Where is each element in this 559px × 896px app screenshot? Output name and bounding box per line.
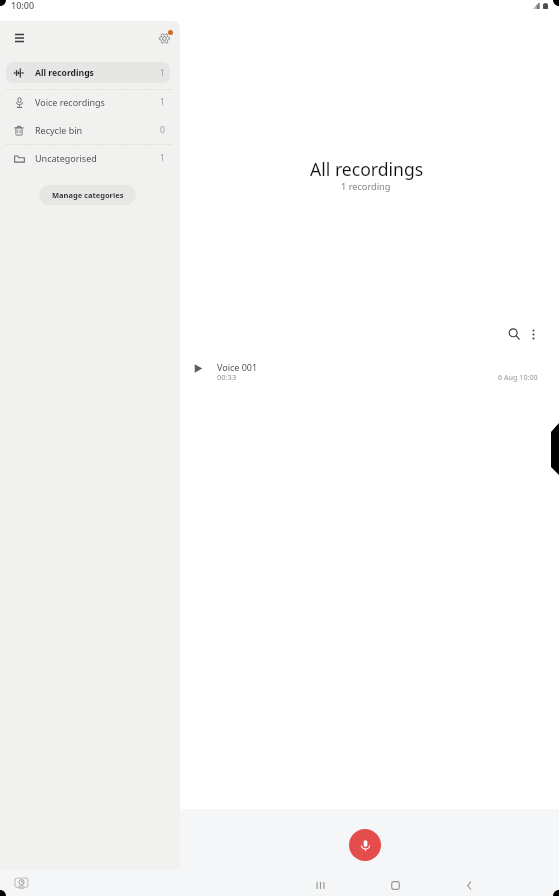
staticText: 1 <box>160 96 165 108</box>
staticText: All recordings <box>310 157 424 181</box>
staticText: Recycle bin <box>35 124 83 136</box>
button[interactable]: Home <box>389 879 401 891</box>
staticText: All recordings <box>35 67 94 79</box>
button[interactable]: Uncategorised <box>6 147 170 168</box>
staticText: 0 <box>160 124 165 136</box>
button[interactable]: Voice recordings <box>6 91 170 112</box>
staticText: Manage categories <box>52 190 124 200</box>
button[interactable]: Recents <box>314 879 326 891</box>
staticText: 1 <box>160 67 165 79</box>
button[interactable]: Recycle bin <box>6 119 170 140</box>
button[interactable]: More options <box>523 324 543 344</box>
staticText: Voice 001 <box>217 361 258 373</box>
button[interactable]: Screen timeout <box>11 873 32 894</box>
staticText: 1 recording <box>341 180 391 193</box>
staticText: 10:00 <box>11 0 35 11</box>
staticText: 1 <box>160 152 165 164</box>
button[interactable]: Navigation menu <box>9 28 29 48</box>
staticText: 6 Aug 10:00 <box>498 372 538 382</box>
button[interactable]: Settings <box>154 28 174 48</box>
staticText: 00:33 <box>217 372 237 382</box>
staticText: Uncategorised <box>35 152 97 164</box>
button[interactable]: Back <box>463 879 475 891</box>
button[interactable]: Record <box>349 829 381 861</box>
staticText: Voice recordings <box>35 96 105 108</box>
button[interactable]: Search <box>504 324 524 344</box>
button[interactable]: Voice 001 <box>180 355 559 387</box>
button[interactable]: All recordings <box>6 62 170 83</box>
button[interactable]: Manage categories <box>39 185 136 205</box>
